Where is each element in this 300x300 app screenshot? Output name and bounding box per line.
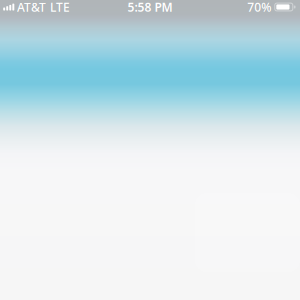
staticText: 5:58 PM xyxy=(127,0,172,15)
staticText: 70% xyxy=(247,0,271,15)
staticText: LTE xyxy=(50,0,70,15)
staticText: AT&T xyxy=(17,0,46,15)
